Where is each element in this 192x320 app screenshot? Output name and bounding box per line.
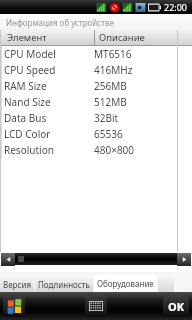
staticText: Версия [3,279,31,290]
button[interactable]: LCD Color [0,126,192,142]
staticText: 32Bit [94,111,192,125]
staticText: Data Bus [4,111,94,125]
staticText: LCD Color [4,127,94,141]
staticText: CPU Speed [4,63,94,77]
button[interactable]: Подлинность [35,277,93,292]
button[interactable]: Start [3,295,25,317]
button[interactable]: CPU Speed [0,62,192,78]
staticText: Подлинность [38,279,90,290]
staticText: 65536 [94,127,192,141]
button[interactable]: Nand Size [0,94,192,110]
button[interactable]: RAM Size [0,78,192,94]
button[interactable]: Resolution [0,142,192,158]
button[interactable]: Описание [95,30,177,45]
staticText: Информация об устройстве [6,17,114,28]
button[interactable]: Scroll right [177,253,191,266]
staticText: RAM Size [4,79,94,93]
staticText: Описание [99,31,145,44]
button[interactable]: More tabs [158,277,174,292]
button[interactable]: Версия [0,277,34,292]
button[interactable]: Scroll left [1,253,15,266]
staticText: Элемент [7,31,47,44]
staticText: 416MHz [94,63,192,77]
button[interactable]: OK [163,295,189,317]
staticText: 256MB [94,79,192,93]
staticText: MT6516 [94,47,192,61]
staticText: 512MB [94,95,192,109]
staticText: Nand Size [4,95,94,109]
staticText: Resolution [4,143,94,157]
staticText: 480×800 [94,143,192,157]
button[interactable]: Data Bus [0,110,192,126]
button[interactable]: Оборудование [94,275,157,292]
staticText: Оборудование [97,278,154,289]
button[interactable]: Элемент [3,30,94,45]
staticText: OK [168,299,185,314]
button[interactable] [15,253,177,265]
button[interactable]: Keyboard [85,295,107,317]
staticText: 22:00 [164,1,188,13]
staticText: CPU Model [4,47,94,61]
button[interactable]: CPU Model [0,46,192,62]
